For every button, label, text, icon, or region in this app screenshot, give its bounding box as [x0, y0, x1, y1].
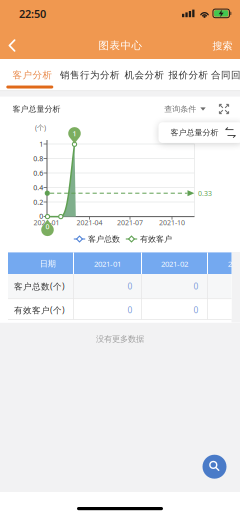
- button[interactable]: Back: [2, 35, 22, 55]
- staticText: 图表中心: [98, 39, 142, 52]
- staticText: 0: [39, 211, 43, 221]
- staticText: 客户总量分析: [170, 128, 218, 138]
- staticText: 有效客户: [140, 234, 172, 244]
- staticText: 报价分析: [168, 69, 208, 81]
- staticText: 客户总量分析: [12, 104, 60, 114]
- staticText: 2021-02: [161, 258, 188, 269]
- staticText: 0.6: [33, 168, 43, 178]
- staticText: 2021-03: [228, 258, 240, 269]
- staticText: 2021-01: [33, 218, 59, 227]
- staticText: 销售行为分析: [60, 69, 120, 81]
- staticText: 0: [45, 222, 49, 231]
- staticText: 合同回款分析: [211, 69, 240, 81]
- staticText: 没有更多数据: [96, 334, 144, 344]
- button[interactable]: 查询条件: [164, 104, 206, 114]
- button[interactable]: 客户总量分析: [158, 122, 240, 143]
- staticText: 客户总数(个): [14, 280, 65, 292]
- staticText: 2021-10: [159, 218, 185, 227]
- staticText: 1: [72, 129, 76, 138]
- button[interactable]: 机会分析: [124, 69, 164, 81]
- staticText: 0: [193, 280, 198, 292]
- staticText: 1: [39, 139, 43, 149]
- staticText: 0.33: [198, 188, 212, 198]
- staticText: 0: [193, 304, 198, 316]
- staticText: 查询条件: [164, 104, 196, 114]
- button[interactable]: 报价分析: [168, 69, 208, 81]
- staticText: 0: [127, 280, 132, 292]
- button[interactable]: Expand: [219, 104, 229, 114]
- staticText: 0.4: [33, 183, 43, 192]
- staticText: 客户总数: [88, 234, 120, 244]
- staticText: 机会分析: [124, 69, 164, 81]
- staticText: 搜索: [212, 40, 232, 52]
- staticText: 2021-04: [76, 218, 102, 227]
- staticText: 0: [127, 304, 132, 316]
- staticText: 0.8: [33, 154, 43, 163]
- staticText: 客户分析: [12, 69, 52, 81]
- button[interactable]: 搜索: [212, 40, 232, 52]
- staticText: 22:50: [19, 6, 46, 21]
- button[interactable]: 客户分析: [12, 69, 52, 81]
- button[interactable]: 合同回款分析: [211, 69, 240, 81]
- staticText: 2021-01: [94, 258, 121, 269]
- staticText: (个): [35, 123, 46, 132]
- staticText: 日期: [40, 258, 56, 269]
- button[interactable]: Search: [202, 455, 226, 479]
- button[interactable]: 销售行为分析: [60, 69, 120, 81]
- staticText: 2021-07: [117, 218, 143, 227]
- staticText: 0.2: [33, 197, 43, 207]
- staticText: 有效客户(个): [14, 304, 65, 316]
